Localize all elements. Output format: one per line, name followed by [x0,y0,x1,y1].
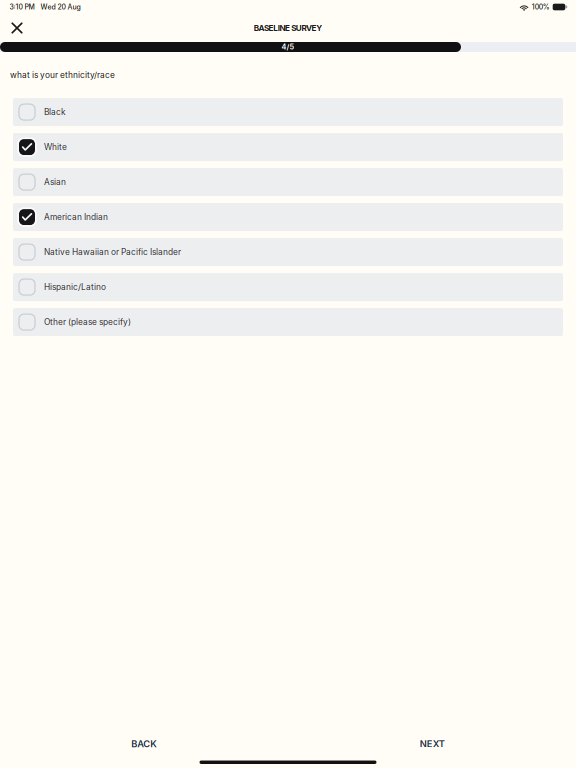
button[interactable]: Asian [13,168,563,196]
button[interactable]: Close [0,14,34,42]
staticText: Asian [44,177,66,187]
staticText: 4/5 [281,43,294,51]
staticText: Native Hawaiian or Pacific Islander [44,247,181,257]
button[interactable]: Other (please specify) [13,308,563,336]
staticText: American Indian [44,212,108,222]
button[interactable]: Native Hawaiian or Pacific Islander [13,238,563,266]
staticText: NEXT [420,738,445,749]
staticText: Wed 20 Aug [40,3,80,11]
staticText: Black [44,107,66,117]
staticText: 100% [532,3,550,11]
staticText: 3:10 PM [9,3,34,11]
staticText: Hispanic/Latino [44,282,106,292]
button[interactable]: White [13,133,563,161]
staticText: BACK [131,738,157,749]
button[interactable]: Hispanic/Latino [13,273,563,301]
staticText: BASELINE SURVEY [254,23,322,33]
button[interactable]: NEXT [398,730,467,757]
button[interactable]: BACK [109,730,179,757]
button[interactable]: Black [13,98,563,126]
staticText: Other (please specify) [44,317,131,327]
staticText: White [44,142,67,152]
staticText: what is your ethnicity/race [10,70,115,80]
button[interactable]: American Indian [13,203,563,231]
